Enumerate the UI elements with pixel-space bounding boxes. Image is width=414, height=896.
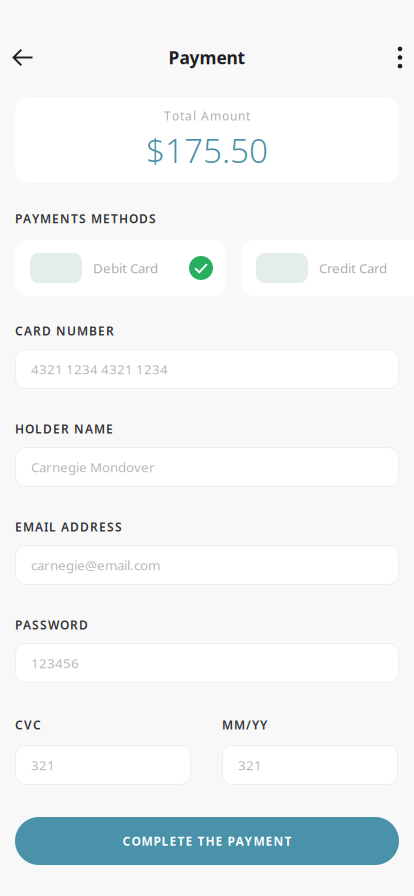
- staticText: Credit Card: [319, 259, 387, 277]
- staticText: Payment: [168, 46, 245, 69]
- staticText: P A S S W O R D: [15, 617, 88, 633]
- staticText: M M / Y Y: [222, 717, 267, 733]
- button[interactable]: Credit Card: [241, 240, 414, 296]
- staticText: C V C: [15, 717, 41, 733]
- button[interactable]: More options: [378, 35, 414, 79]
- staticText: C O M P L E T E T H E P A Y M E N T: [122, 833, 291, 849]
- staticText: Debit Card: [93, 259, 158, 277]
- staticText: Carnegie Mondover: [31, 458, 155, 476]
- staticText: H O L D E R N A M E: [15, 421, 113, 437]
- staticText: T o t a l A m o u n t: [164, 108, 250, 124]
- staticText: 321: [31, 756, 55, 774]
- staticText: 123456: [31, 654, 79, 672]
- staticText: $175.50: [146, 128, 268, 172]
- staticText: E M A I L A D D R E S S: [15, 519, 122, 535]
- staticText: C A R D N U M B E R: [15, 323, 114, 339]
- staticText: 4321 1234 4321 1234: [31, 360, 168, 378]
- staticText: P A Y M E N T S M E T H O D S: [15, 210, 156, 226]
- staticText: 321: [238, 756, 262, 774]
- button[interactable]: Back: [1, 35, 45, 79]
- button[interactable]: C O M P L E T E T H E P A Y M E N T: [15, 817, 399, 865]
- staticText: carnegie@email.com: [31, 556, 160, 574]
- button[interactable]: Debit Card: [15, 240, 226, 296]
